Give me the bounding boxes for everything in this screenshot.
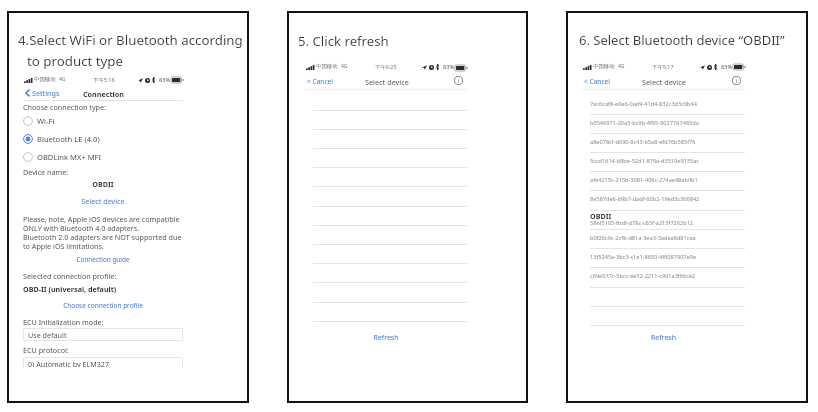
staticText: OBDII bbox=[23, 179, 183, 189]
staticText: afe4215c-215b-3081-406c-274ae48eb0b1 bbox=[590, 176, 698, 184]
button[interactable]: < Cancel bbox=[307, 77, 334, 86]
button[interactable]: OBDII bbox=[582, 210, 745, 229]
staticText: 6. Select Bluetooth device “OBDII” bbox=[579, 31, 785, 49]
button[interactable]: 0) Automatic by ELM327 bbox=[23, 357, 183, 370]
staticText: 4G bbox=[618, 63, 625, 70]
button[interactable]: Info bbox=[454, 76, 463, 85]
staticText: to product type bbox=[27, 52, 124, 70]
staticText: 4G bbox=[341, 63, 348, 70]
button[interactable] bbox=[305, 186, 467, 205]
staticText: 58ef5105-fbdf-d78c-c65f-a213f7262b12 bbox=[590, 219, 694, 227]
staticText: i bbox=[458, 77, 460, 85]
button[interactable] bbox=[305, 167, 467, 186]
button[interactable]: 8e587de6-b9b7-dadf-60b2-19ed3c366842 bbox=[582, 190, 745, 209]
staticText: 83% bbox=[443, 63, 455, 71]
staticText: Settings bbox=[32, 88, 60, 98]
staticText: i bbox=[736, 77, 738, 85]
button[interactable] bbox=[305, 225, 467, 244]
staticText: Select device bbox=[365, 77, 409, 87]
staticText: Connection bbox=[83, 89, 124, 99]
staticText: 8e587de6-b9b7-dadf-60b2-19ed3c366842 bbox=[590, 195, 700, 203]
button[interactable] bbox=[305, 302, 467, 321]
button[interactable]: b0546971-20a5-bc9b-4f95-90277d7465da bbox=[582, 114, 745, 133]
button[interactable]: Wi-Fi bbox=[23, 115, 138, 127]
staticText: ECU protocol: bbox=[23, 345, 69, 355]
button[interactable]: Info bbox=[732, 76, 741, 85]
staticText: 5. Click refresh bbox=[298, 32, 389, 50]
button[interactable]: a8e078cf-d090-8c43-b5a8-efd76b585f76 bbox=[582, 133, 745, 152]
staticText: OBDLink MX+ MFI bbox=[37, 152, 102, 162]
button[interactable]: Use default bbox=[23, 328, 183, 341]
button[interactable] bbox=[305, 206, 467, 225]
staticText: 中国移动 bbox=[34, 76, 56, 83]
button[interactable] bbox=[305, 148, 467, 167]
staticText: b0546971-20a5-bc9b-4f95-90277d7465da bbox=[590, 119, 699, 127]
button[interactable]: Refresh bbox=[305, 333, 467, 343]
staticText: 下午6:25 bbox=[375, 63, 397, 70]
button[interactable] bbox=[305, 110, 467, 129]
button[interactable]: c69e077c-5bcc-ee52-2211-c901a3f66ce2 bbox=[582, 267, 745, 286]
staticText: Select device bbox=[642, 77, 686, 87]
button[interactable]: Bluetooth LE (4.0) bbox=[23, 133, 138, 145]
staticText: Use default bbox=[28, 330, 67, 340]
button[interactable]: < Cancel bbox=[584, 77, 611, 86]
button[interactable] bbox=[305, 129, 467, 148]
staticText: 下午5:16 bbox=[93, 76, 115, 83]
staticText: 13f5245a-3bc3-c1e1-8650-4f6087907e9e bbox=[590, 253, 697, 261]
staticText: c69e077c-5bcc-ee52-2211-c901a3f66ce2 bbox=[590, 272, 696, 280]
staticText: ONLY with Bluetooth 4.0 adapters. bbox=[23, 223, 140, 233]
staticText: 中国移动 bbox=[316, 63, 338, 70]
button[interactable]: Connection guide bbox=[23, 255, 183, 264]
button[interactable]: 5ccd1614-b8be-52d1-876a-d3519e9135ac bbox=[582, 152, 745, 171]
staticText: 4G bbox=[59, 76, 66, 83]
staticText: Device name: bbox=[23, 167, 69, 177]
staticText: a8e078cf-d090-8c43-b5a8-efd76b585f76 bbox=[590, 138, 696, 146]
button[interactable]: Back to Settings bbox=[23, 87, 183, 99]
staticText: OBDII bbox=[590, 211, 612, 221]
staticText: 中国移动 bbox=[593, 63, 615, 70]
staticText: 7ec6caf8-e6e6-0ad9-41d4-832c3d3c0b44 bbox=[590, 100, 697, 108]
button[interactable]: OBDLink MX+ MFI bbox=[23, 151, 138, 163]
button[interactable]: Refresh bbox=[582, 333, 745, 343]
staticText: b0f26c9c-2cfb-d81a-3ea3-3adea8d81cea bbox=[590, 234, 696, 242]
staticText: Bluetooth 2.0 adapters are NOT supported… bbox=[23, 232, 182, 242]
staticText: 0) Automatic by ELM327 bbox=[28, 359, 110, 369]
button[interactable]: Select device bbox=[23, 196, 183, 206]
staticText: Please, note, Apple iOS devices are comp… bbox=[23, 214, 180, 224]
staticText: 83% bbox=[721, 63, 733, 71]
staticText: Bluetooth LE (4.0) bbox=[37, 134, 100, 144]
button[interactable]: 7ec6caf8-e6e6-0ad9-41d4-832c3d3c0b44 bbox=[582, 95, 745, 114]
button[interactable] bbox=[305, 263, 467, 282]
staticText: OBD-II (universal, default) bbox=[23, 284, 117, 294]
button[interactable]: 13f5245a-3bc3-c1e1-8650-4f6087907e9e bbox=[582, 248, 745, 267]
staticText: 83% bbox=[159, 76, 171, 84]
staticText: Choose connection type: bbox=[23, 102, 107, 112]
button[interactable]: afe4215c-215b-3081-406c-274ae48eb0b1 bbox=[582, 171, 745, 190]
staticText: 5ccd1614-b8be-52d1-876a-d3519e9135ac bbox=[590, 157, 700, 165]
staticText: Selected connection profile: bbox=[23, 271, 117, 281]
staticText: to Apple iOS limitations. bbox=[23, 241, 104, 251]
button[interactable]: b0f26c9c-2cfb-d81a-3ea3-3adea8d81cea bbox=[582, 229, 745, 248]
button[interactable] bbox=[305, 244, 467, 263]
button[interactable]: Choose connection profile bbox=[23, 301, 183, 310]
staticText: ECU Initialization mode: bbox=[23, 317, 104, 327]
staticText: 下午5:17 bbox=[652, 63, 674, 70]
staticText: Wi-Fi bbox=[37, 116, 55, 126]
button[interactable] bbox=[305, 282, 467, 301]
staticText: 4.Select WiFi or Bluetooth according bbox=[18, 31, 243, 49]
